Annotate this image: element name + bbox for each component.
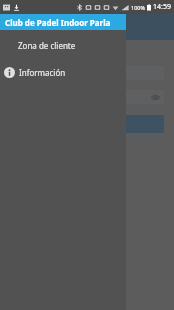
staticText: 100% xyxy=(131,4,146,11)
staticText: 14:59 xyxy=(153,2,171,12)
button[interactable] xyxy=(10,115,164,133)
staticText: Introduce tu usuario aqui xyxy=(10,46,94,56)
button[interactable]: Club de Padel Indoor Parla xyxy=(0,14,126,30)
staticText: Club de Padel Indoor Parla xyxy=(5,17,111,28)
button[interactable]: Mostrar contraseña xyxy=(150,92,160,102)
button[interactable]: Zona de cliente xyxy=(0,36,126,54)
button[interactable]: Información xyxy=(0,63,126,81)
staticText: Zona de cliente xyxy=(18,40,76,51)
staticText: Información xyxy=(19,67,66,78)
